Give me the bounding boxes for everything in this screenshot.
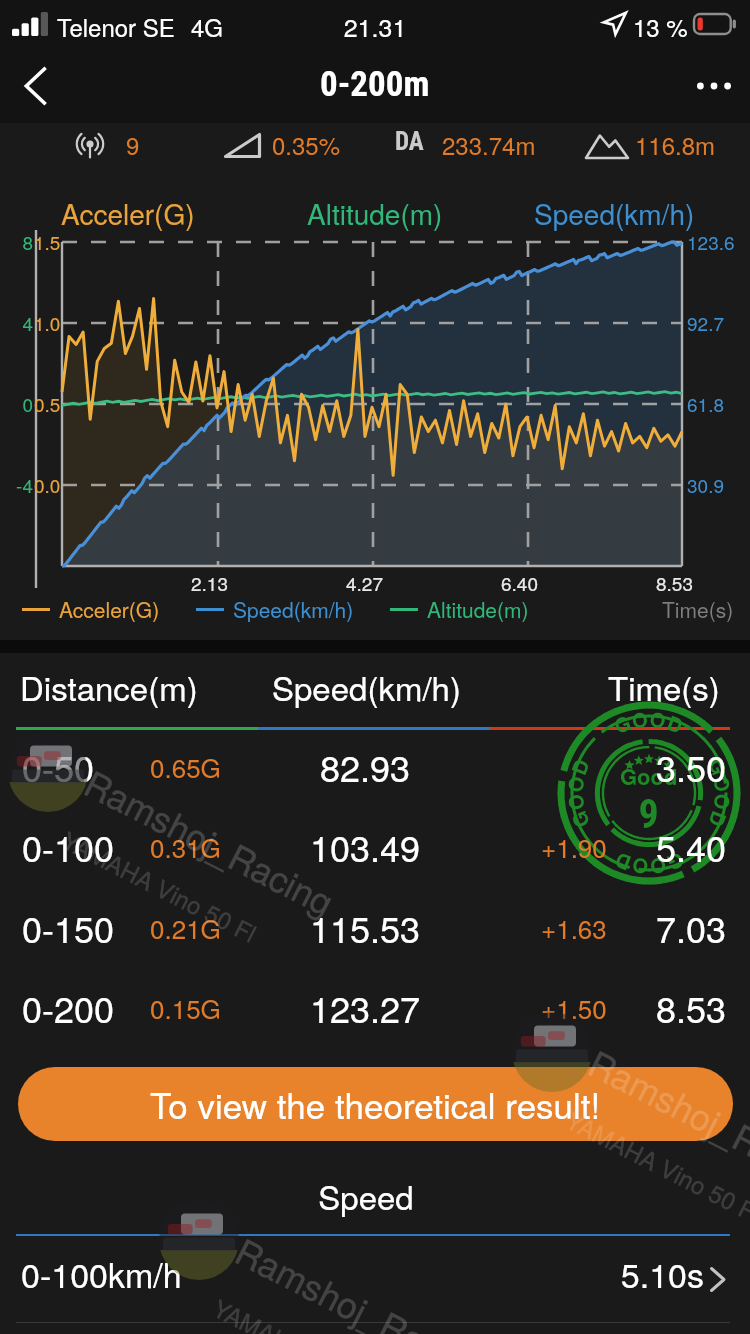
staticText: Altitude(m) [307,193,443,233]
button[interactable]: 0-50 [0,739,750,817]
staticText: Acceler(G) [59,594,160,624]
staticText: Acceler(G) [61,193,195,233]
staticText: 0.15G [150,989,221,1026]
staticText: 103.49 [276,821,454,873]
staticText: Speed(km/h) [272,663,461,710]
staticText: 0.65G [150,748,221,785]
staticText: 123.6 [687,228,735,255]
staticText: +1.50 [541,989,607,1026]
staticText: 0.35% [272,127,341,161]
staticText: 0-100 [22,821,115,873]
staticText: 0-200 [22,982,115,1034]
staticText: 0-100km/h [21,1249,182,1298]
staticText: Time(s) [608,663,720,710]
button[interactable]: 0-200 [0,980,750,1058]
staticText: Telenor SE [57,9,175,43]
staticText: 4G [191,9,224,43]
staticText: 13 % [633,9,688,43]
staticText: Speed(km/h) [233,594,354,624]
staticText: 82.93 [276,741,454,793]
staticText: 0.0 [34,471,61,498]
button[interactable]: 0-100 [0,819,750,897]
staticText: 2.13 [191,569,228,596]
staticText: -4 [0,471,33,498]
staticText: Speed [0,1172,741,1219]
staticText: 8 [0,228,33,255]
staticText: 8.53 [656,569,693,596]
staticText: DA [395,127,424,156]
staticText: 4.27 [346,569,383,596]
staticText: 116.8m [635,127,716,161]
button[interactable]: More options [686,58,742,114]
staticText: 8.53 [620,982,726,1034]
staticText: 4 [0,309,33,336]
button[interactable]: 0-150 [0,900,750,978]
staticText: Distance(m) [20,663,198,710]
staticText: 0.21G [150,909,221,946]
staticText: Speed(km/h) [534,193,695,233]
staticText: Altitude(m) [427,594,529,624]
staticText: 61.8 [687,390,724,417]
staticText: 0-200m [320,64,430,105]
staticText: 115.53 [276,902,454,954]
staticText: 233.74m [442,127,536,161]
staticText: 6.40 [501,569,538,596]
staticText: To view the theoretical result! [150,1079,601,1129]
staticText: 1.5 [34,228,61,255]
staticText: 0.31G [150,828,221,865]
staticText: +1.63 [541,909,607,946]
staticText: 21.31 [0,8,750,44]
staticText: 3.50 [620,741,726,793]
staticText: 0 [0,390,33,417]
staticText: 0-150 [22,902,115,954]
staticText: 5.10s [530,1249,704,1298]
staticText: 5.40 [620,821,726,873]
staticText: 30.9 [687,471,724,498]
button[interactable]: To view the theoretical result! [18,1067,733,1141]
staticText: 7.03 [620,902,726,954]
staticText: 123.27 [276,982,454,1034]
button[interactable]: 0-100km/h [0,1236,750,1322]
staticText: 1.0 [34,309,61,336]
staticText: +1.90 [541,828,607,865]
button[interactable]: Back [8,58,64,114]
staticText: Time(s) [662,594,734,624]
staticText: 9 [126,127,140,161]
staticText: 0.5 [34,390,61,417]
staticText: 92.7 [687,309,724,336]
staticText: 0-50 [22,741,95,793]
